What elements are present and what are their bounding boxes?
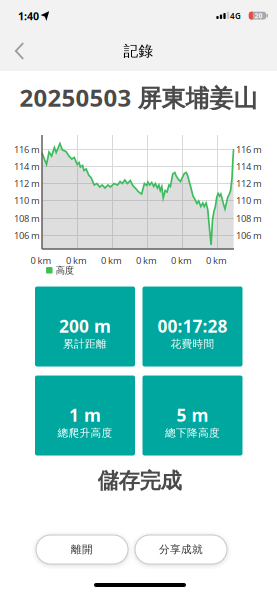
button[interactable]: 分享成就 [135, 535, 227, 564]
button[interactable]: Back [9, 36, 29, 66]
staticText: 20250503 屏東埔姜山 [19, 82, 257, 113]
staticText: 0 km [101, 254, 122, 267]
button[interactable]: 離開 [36, 535, 128, 564]
staticText: 0 km [171, 254, 192, 267]
staticText: 分享成就 [159, 543, 203, 556]
staticText: 00:17:28 [157, 314, 227, 337]
staticText: 高度 [56, 265, 74, 276]
staticText: 4G [230, 11, 241, 21]
staticText: 離開 [71, 543, 93, 556]
staticText: 花費時間 [170, 337, 214, 350]
staticText: 108 m [236, 212, 262, 225]
staticText: 0 km [206, 254, 227, 267]
staticText: 114 m [236, 160, 262, 173]
staticText: 116 m [14, 143, 40, 156]
staticText: 0 km [30, 254, 51, 267]
staticText: 儲存完成 [97, 468, 181, 494]
staticText: 200 m [59, 314, 111, 337]
staticText: 累計距離 [63, 337, 107, 350]
staticText: 總下降高度 [165, 426, 220, 439]
staticText: 0 km [66, 254, 87, 267]
staticText: 110 m [14, 194, 40, 207]
staticText: 112 m [14, 177, 40, 190]
staticText: 112 m [236, 177, 262, 190]
staticText: 116 m [236, 143, 262, 156]
staticText: 1 m [69, 403, 101, 426]
staticText: 108 m [14, 212, 40, 225]
staticText: 0 km [136, 254, 157, 267]
staticText: 110 m [236, 194, 262, 207]
staticText: 5 m [176, 403, 208, 426]
staticText: 1:40 [18, 9, 39, 23]
staticText: 106 m [14, 229, 40, 242]
staticText: 20 [254, 11, 262, 20]
staticText: 總爬升高度 [57, 426, 112, 439]
staticText: 114 m [14, 160, 40, 173]
staticText: 記錄 [123, 42, 153, 60]
staticText: 106 m [236, 229, 262, 242]
